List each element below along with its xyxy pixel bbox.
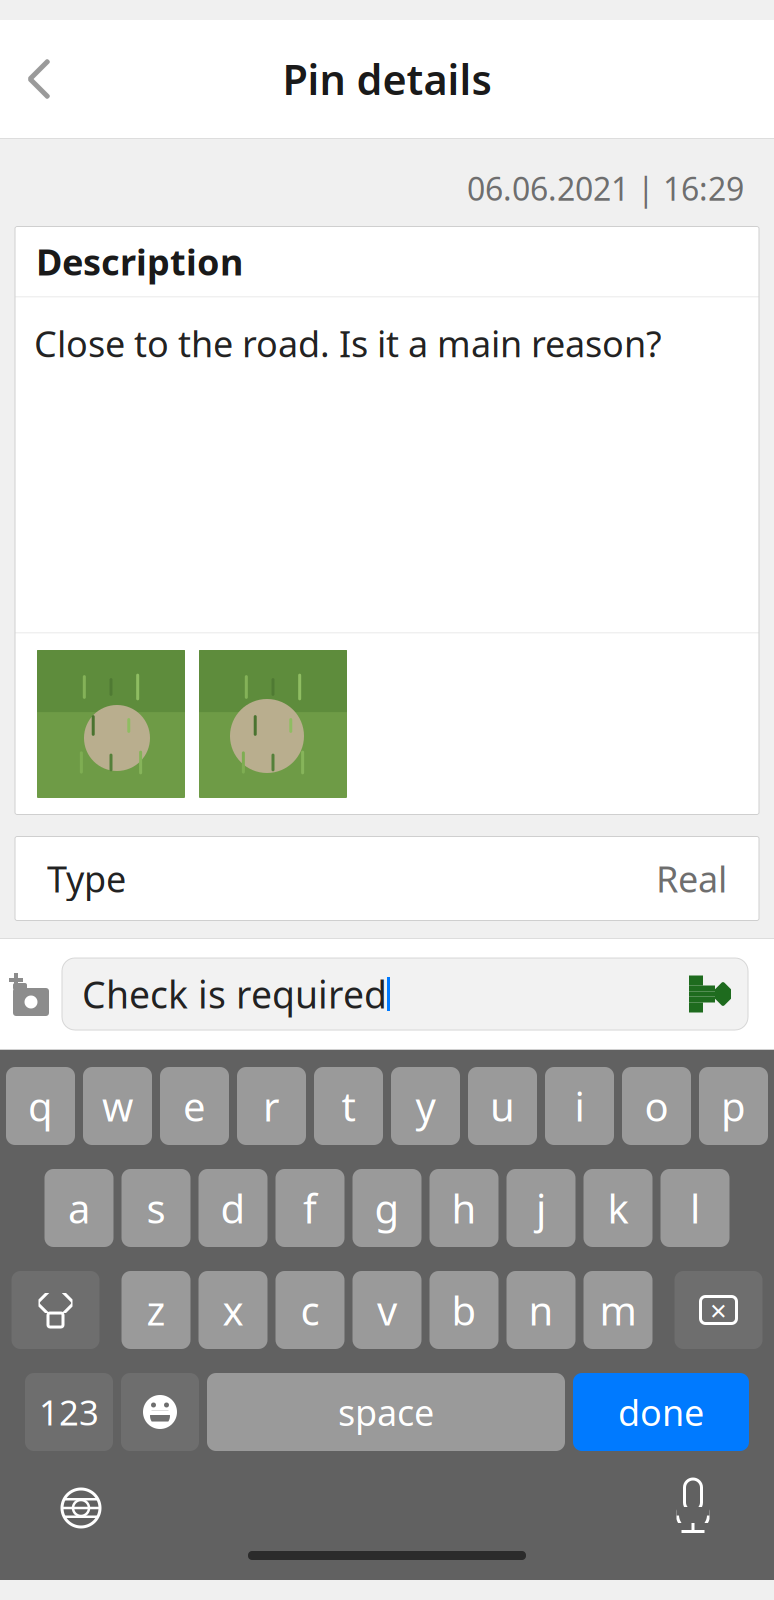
- button[interactable]: y: [391, 1067, 460, 1145]
- button[interactable]: 123: [25, 1373, 113, 1451]
- button[interactable]: Shift: [11, 1271, 99, 1349]
- button[interactable]: z: [121, 1271, 190, 1349]
- staticText: d: [220, 1181, 245, 1234]
- button[interactable]: done: [573, 1373, 749, 1451]
- staticText: h: [451, 1181, 476, 1234]
- button[interactable]: n: [506, 1271, 575, 1349]
- staticText: Check is required: [82, 969, 387, 1019]
- button[interactable]: Photo 2: [199, 650, 347, 798]
- staticText: e: [183, 1079, 206, 1132]
- button[interactable]: d: [198, 1169, 267, 1247]
- staticText: p: [721, 1079, 746, 1132]
- staticText: l: [690, 1181, 700, 1234]
- staticText: x: [222, 1283, 243, 1336]
- staticText: r: [263, 1079, 280, 1132]
- button[interactable]: v: [352, 1271, 421, 1349]
- staticText: v: [377, 1283, 397, 1336]
- button[interactable]: s: [121, 1169, 190, 1247]
- staticText: 06.06.2021 | 16:29: [467, 167, 744, 209]
- button[interactable]: k: [583, 1169, 652, 1247]
- button[interactable]: l: [660, 1169, 729, 1247]
- staticText: z: [146, 1283, 165, 1336]
- button[interactable]: c: [275, 1271, 344, 1349]
- button[interactable]: f: [275, 1169, 344, 1247]
- button[interactable]: t: [314, 1067, 383, 1145]
- button[interactable]: m: [583, 1271, 652, 1349]
- staticText: o: [644, 1079, 668, 1132]
- staticText: n: [528, 1283, 553, 1336]
- staticText: done: [618, 1388, 704, 1436]
- staticText: Real: [656, 855, 727, 902]
- staticText: y: [415, 1079, 435, 1132]
- staticText: ×: [710, 1290, 727, 1329]
- button[interactable]: Next keyboard: [36, 1465, 126, 1551]
- button[interactable]: space: [207, 1373, 565, 1451]
- button[interactable]: Photo 1: [37, 650, 185, 798]
- staticText: 123: [39, 1389, 99, 1435]
- button[interactable]: o: [622, 1067, 691, 1145]
- button[interactable]: Delete: [674, 1271, 762, 1349]
- staticText: Pin details: [282, 52, 491, 106]
- button[interactable]: p: [699, 1067, 768, 1145]
- staticText: Type: [47, 855, 126, 902]
- staticText: k: [607, 1181, 628, 1234]
- button[interactable]: Dictation: [648, 1465, 738, 1551]
- staticText: j: [536, 1181, 546, 1234]
- button[interactable]: b: [429, 1271, 498, 1349]
- staticText: Description: [36, 238, 243, 285]
- button[interactable]: Send: [678, 964, 738, 1024]
- staticText: t: [341, 1079, 355, 1132]
- staticText: f: [303, 1181, 317, 1234]
- staticText: m: [599, 1283, 636, 1336]
- staticText: u: [490, 1079, 515, 1132]
- staticText: i: [574, 1079, 584, 1132]
- button[interactable]: h: [429, 1169, 498, 1247]
- button[interactable]: Add photo: [0, 957, 62, 1031]
- staticText: Close to the road. Is it a main reason?: [34, 319, 662, 367]
- button[interactable]: r: [237, 1067, 306, 1145]
- button[interactable]: w: [83, 1067, 152, 1145]
- staticText: g: [374, 1181, 399, 1234]
- button[interactable]: g: [352, 1169, 421, 1247]
- button[interactable]: a: [44, 1169, 113, 1247]
- button[interactable]: q: [6, 1067, 75, 1145]
- staticText: a: [68, 1181, 90, 1234]
- staticText: q: [28, 1079, 53, 1132]
- button[interactable]: u: [468, 1067, 537, 1145]
- staticText: b: [451, 1283, 476, 1336]
- staticText: c: [300, 1283, 319, 1336]
- button[interactable]: e: [160, 1067, 229, 1145]
- button[interactable]: i: [545, 1067, 614, 1145]
- staticText: s: [146, 1181, 165, 1234]
- button[interactable]: j: [506, 1169, 575, 1247]
- button[interactable]: Emoji: [121, 1373, 199, 1451]
- staticText: w: [102, 1079, 133, 1132]
- staticText: space: [338, 1388, 434, 1436]
- button[interactable]: x: [198, 1271, 267, 1349]
- button[interactable]: Back: [0, 43, 78, 115]
